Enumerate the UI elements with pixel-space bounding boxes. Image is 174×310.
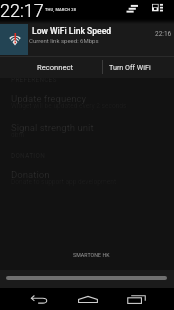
staticText: SMARTONE HK: [73, 252, 110, 258]
staticText: DONATION: [11, 152, 45, 160]
button[interactable]: Reconnect: [0, 57, 110, 77]
staticText: 22:17: [0, 0, 44, 21]
staticText: Reconnect: [37, 63, 73, 72]
button[interactable]: Back: [15, 288, 64, 310]
staticText: Donation: [11, 169, 50, 180]
staticText: Turn Off WiFi: [109, 63, 151, 71]
staticText: THU, MARCH 28: [45, 7, 77, 12]
button[interactable]: Recent apps: [112, 288, 161, 310]
button[interactable]: Home: [64, 288, 112, 310]
staticText: Update frequency: [11, 93, 87, 104]
staticText: Current link speed: 6Mbps: [29, 37, 99, 44]
staticText: PREFERENCES: [11, 76, 57, 84]
staticText: Signal strength unit: [11, 122, 94, 133]
button[interactable]: Turn Off WiFi: [103, 57, 157, 77]
staticText: dbm: [11, 131, 25, 139]
staticText: 22:16: [155, 30, 172, 38]
staticText: Low WiFi Link Speed: [32, 26, 112, 36]
